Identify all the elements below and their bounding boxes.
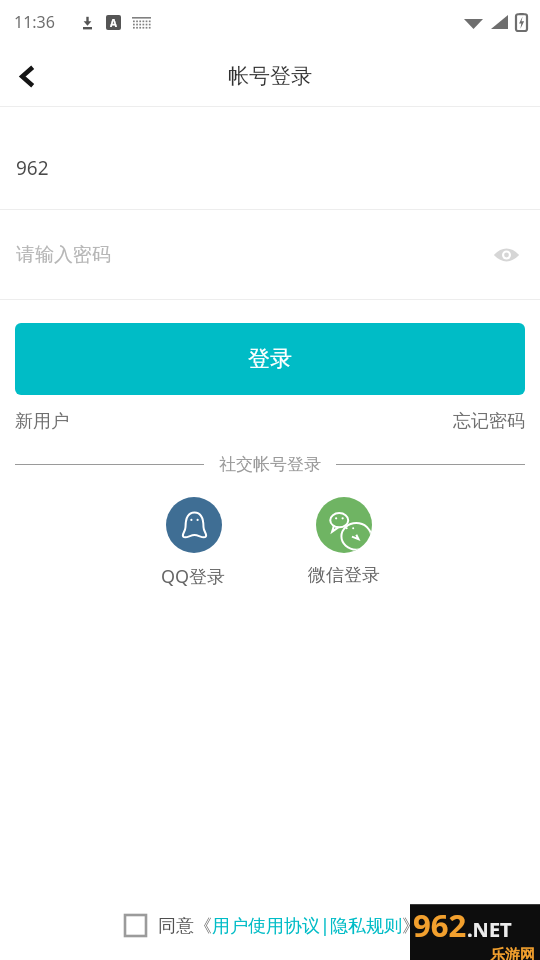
button[interactable]: QQ登录 [157,497,230,589]
staticText: 11:36 [14,11,55,33]
button[interactable]: Back [0,48,56,104]
button[interactable]: 忘记密码 [453,406,525,437]
staticText: 请输入密码 [16,243,111,267]
staticText: 同意《用户使用协议|隐私规则》 [158,913,420,938]
staticText: 新用户 [15,410,69,433]
button[interactable]: 新用户 [15,406,69,437]
button[interactable]: 微信登录 [304,497,384,587]
button[interactable]: Show password [486,235,526,275]
button[interactable]: 962 [0,126,540,209]
button[interactable]: Agree to terms [121,911,150,940]
button[interactable]: 请输入密码 [0,210,540,299]
staticText: .NET [467,916,512,943]
button[interactable]: 同意《用户使用协议|隐私规则》 [158,913,420,938]
staticText: 962 [413,904,467,946]
staticText: 乐游网 [490,946,535,960]
staticText: A [110,16,117,30]
staticText: 微信登录 [308,564,380,587]
staticText: 忘记密码 [453,410,525,433]
staticText: 962 [16,155,49,181]
staticText: 登录 [248,345,292,373]
staticText: QQ登录 [161,564,226,589]
staticText: 社交帐号登录 [219,454,321,475]
staticText: 帐号登录 [228,63,312,89]
button[interactable]: 登录 [15,323,525,395]
